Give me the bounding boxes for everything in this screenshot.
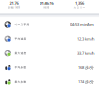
staticText: 最大歩数 — [15, 80, 27, 83]
staticText: 1,356 — [75, 1, 84, 6]
staticText: カロリー — [73, 6, 85, 9]
staticText: 01:46:16 — [39, 1, 53, 6]
staticText: 最大速度 — [15, 51, 27, 55]
staticText: 距離 (km) — [8, 6, 20, 9]
staticText: 174 歩/分 — [78, 79, 94, 84]
staticText: 平均速度 — [15, 37, 27, 40]
button[interactable]: 平均歩数 — [0, 60, 99, 75]
staticText: 平均歩数 — [15, 66, 27, 69]
staticText: 21.76 — [9, 0, 18, 6]
button[interactable]: 最大歩数 — [0, 75, 99, 89]
staticText: 33.7 km/h — [77, 50, 94, 56]
staticText: 168 歩/分 — [78, 65, 94, 70]
button[interactable]: 平均速度 — [0, 32, 99, 46]
staticText: 04:53 min/km — [70, 22, 94, 27]
button[interactable]: 最大速度 — [0, 46, 99, 60]
staticText: 12.3 km/h — [77, 36, 94, 41]
button[interactable]: ペース平均 — [0, 17, 99, 32]
staticText: 時間 — [43, 6, 49, 9]
staticText: ペース平均 — [15, 23, 30, 26]
